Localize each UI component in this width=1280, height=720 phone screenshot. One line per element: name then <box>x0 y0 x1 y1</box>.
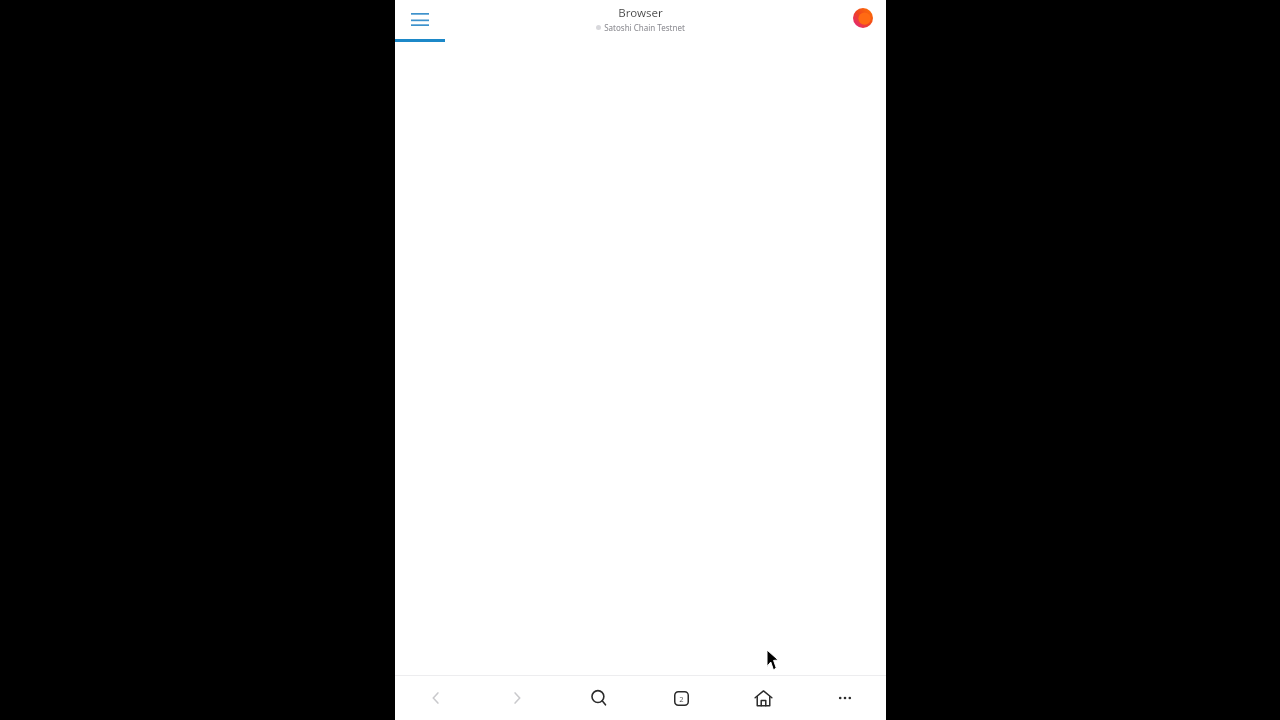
button[interactable]: Menu <box>402 1 438 37</box>
staticText: 2 <box>679 694 684 704</box>
button[interactable]: Browser <box>596 5 685 32</box>
staticText: Browser <box>618 5 663 21</box>
button[interactable]: Forward <box>476 676 558 720</box>
button[interactable]: Account <box>848 3 878 33</box>
button[interactable]: Back <box>395 676 476 720</box>
button[interactable]: Search <box>558 676 640 720</box>
button[interactable]: Home <box>722 676 804 720</box>
button[interactable]: Tabs <box>640 676 722 720</box>
staticText: Satoshi Chain Testnet <box>604 22 685 33</box>
button[interactable]: More options <box>804 676 886 720</box>
